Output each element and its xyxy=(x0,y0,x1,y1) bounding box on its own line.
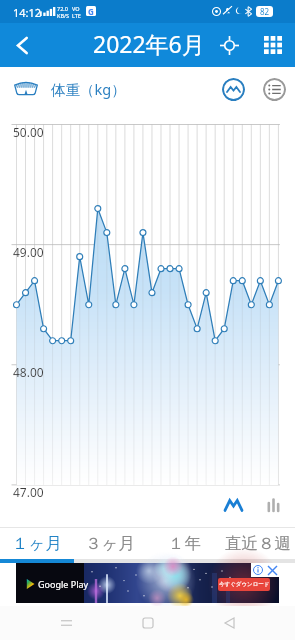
staticText: 2022年6月 xyxy=(93,28,205,59)
button[interactable]: Line chart xyxy=(222,494,244,516)
button[interactable]: Home xyxy=(132,607,164,639)
button[interactable]: Grid menu xyxy=(251,23,295,67)
staticText: 48.00 xyxy=(13,364,44,380)
staticText: LTE xyxy=(72,12,81,19)
button[interactable]: Graph view xyxy=(222,78,245,101)
staticText: 体重（kg） xyxy=(51,79,126,99)
button[interactable]: 直近８週 xyxy=(221,527,295,559)
staticText: ３ヶ月 xyxy=(85,533,135,554)
staticText: 今すぐダウンロード xyxy=(219,581,270,588)
staticText: Google Play xyxy=(38,578,89,590)
button[interactable]: Bar chart xyxy=(262,494,284,516)
button[interactable]: Back xyxy=(0,23,44,67)
staticText: G xyxy=(88,6,94,16)
button[interactable]: Recents xyxy=(50,607,82,639)
staticText: KB/S xyxy=(57,12,70,19)
button[interactable]: List view xyxy=(263,78,286,101)
button[interactable]: Back xyxy=(213,607,245,639)
staticText: 直近８週 xyxy=(225,533,291,554)
button[interactable]: Close ad xyxy=(265,563,279,577)
staticText: 82 xyxy=(260,6,270,17)
staticText: １年 xyxy=(168,533,201,554)
staticText: １ヶ月 xyxy=(12,533,62,554)
staticText: 50.00 xyxy=(13,124,44,140)
button[interactable]: 今すぐダウンロード xyxy=(218,578,270,591)
staticText: 49.00 xyxy=(13,244,44,260)
button[interactable]: １年 xyxy=(147,527,221,559)
staticText: VO xyxy=(72,5,80,12)
button[interactable]: １ヶ月 xyxy=(0,527,73,559)
staticText: 72.0 xyxy=(57,5,68,12)
button[interactable]: Google Play xyxy=(16,563,279,603)
staticText: 47.00 xyxy=(13,484,44,500)
button[interactable]: ３ヶ月 xyxy=(73,527,147,559)
staticText: 14:12 xyxy=(13,5,42,20)
button[interactable]: Today xyxy=(207,23,251,67)
